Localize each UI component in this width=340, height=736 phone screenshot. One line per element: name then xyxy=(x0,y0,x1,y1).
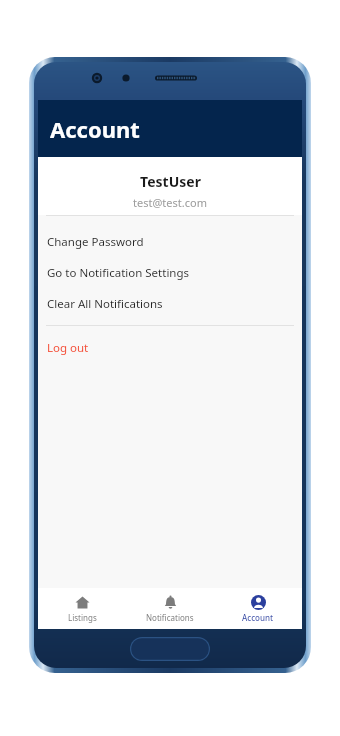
staticText: Clear All Notifications xyxy=(47,296,163,312)
staticText: Go to Notification Settings xyxy=(47,265,190,281)
staticText: TestUser xyxy=(140,172,201,191)
staticText: test@test.com xyxy=(133,195,207,210)
staticText: Account xyxy=(50,114,140,144)
button[interactable]: Account xyxy=(214,588,302,629)
button[interactable]: Listings xyxy=(38,588,126,629)
staticText: Notifications xyxy=(146,612,194,623)
button[interactable]: Log out xyxy=(38,332,302,363)
button[interactable]: Change Password xyxy=(38,226,302,257)
staticText: Account xyxy=(242,612,274,623)
button[interactable]: Clear All Notifications xyxy=(38,288,302,319)
staticText: Change Password xyxy=(47,234,144,250)
staticText: Log out xyxy=(47,340,89,356)
button[interactable]: Go to Notification Settings xyxy=(38,257,302,288)
staticText: Listings xyxy=(68,612,97,623)
button[interactable]: Notifications xyxy=(126,588,214,629)
